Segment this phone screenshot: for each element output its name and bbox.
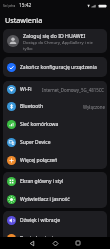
staticText: Wi-Fi	[20, 86, 32, 93]
button[interactable]: Wyświetlacz i jasność	[3, 190, 107, 208]
staticText: Wyłączone	[83, 104, 105, 110]
button[interactable]: Super Device	[3, 133, 107, 151]
staticText: Zaloguj się do ID HUAWEI	[23, 32, 86, 39]
button[interactable]: Więcej połączeń	[3, 151, 107, 169]
button[interactable]: Recents	[68, 237, 88, 249]
staticText: Zakończ konfigurację urządzenia	[20, 64, 97, 71]
button[interactable]: Sieć komórkowa	[3, 115, 107, 133]
button[interactable]: Back	[22, 237, 42, 249]
button[interactable]: Zakończ konfigurację urządzenia	[3, 57, 107, 77]
staticText: Sieć komórkowa	[20, 121, 59, 128]
button[interactable]: Wi-Fi	[3, 81, 107, 98]
staticText: Sieć pełna	[3, 4, 16, 8]
staticText: Powiadomienia	[20, 235, 57, 242]
staticText: 15:42	[19, 2, 32, 9]
button[interactable]: Powiadomienia	[3, 229, 107, 247]
button[interactable]: Ekran główny i styl	[3, 172, 107, 190]
button[interactable]: Zaloguj się do ID HUAWEI	[3, 29, 107, 53]
staticText: Internet_Domowy_5G_4815CC	[42, 87, 105, 93]
staticText: Ustawienia	[5, 15, 43, 25]
staticText: Super Device	[20, 139, 51, 146]
staticText: Bluetooth	[20, 103, 44, 110]
button[interactable]: Home	[45, 237, 65, 249]
button[interactable]: Dźwięk i wibracje	[3, 211, 107, 229]
staticText: Wyświetlacz i jasność	[20, 196, 70, 203]
staticText: Dźwięk i wibracje	[20, 217, 61, 224]
staticText: Dostęp do Chmury, AppGallery i nie tylko	[23, 40, 93, 51]
staticText: Ekran główny i styl	[20, 178, 64, 185]
staticText: Więcej połączeń	[20, 157, 58, 164]
button[interactable]: Bluetooth	[3, 98, 107, 115]
